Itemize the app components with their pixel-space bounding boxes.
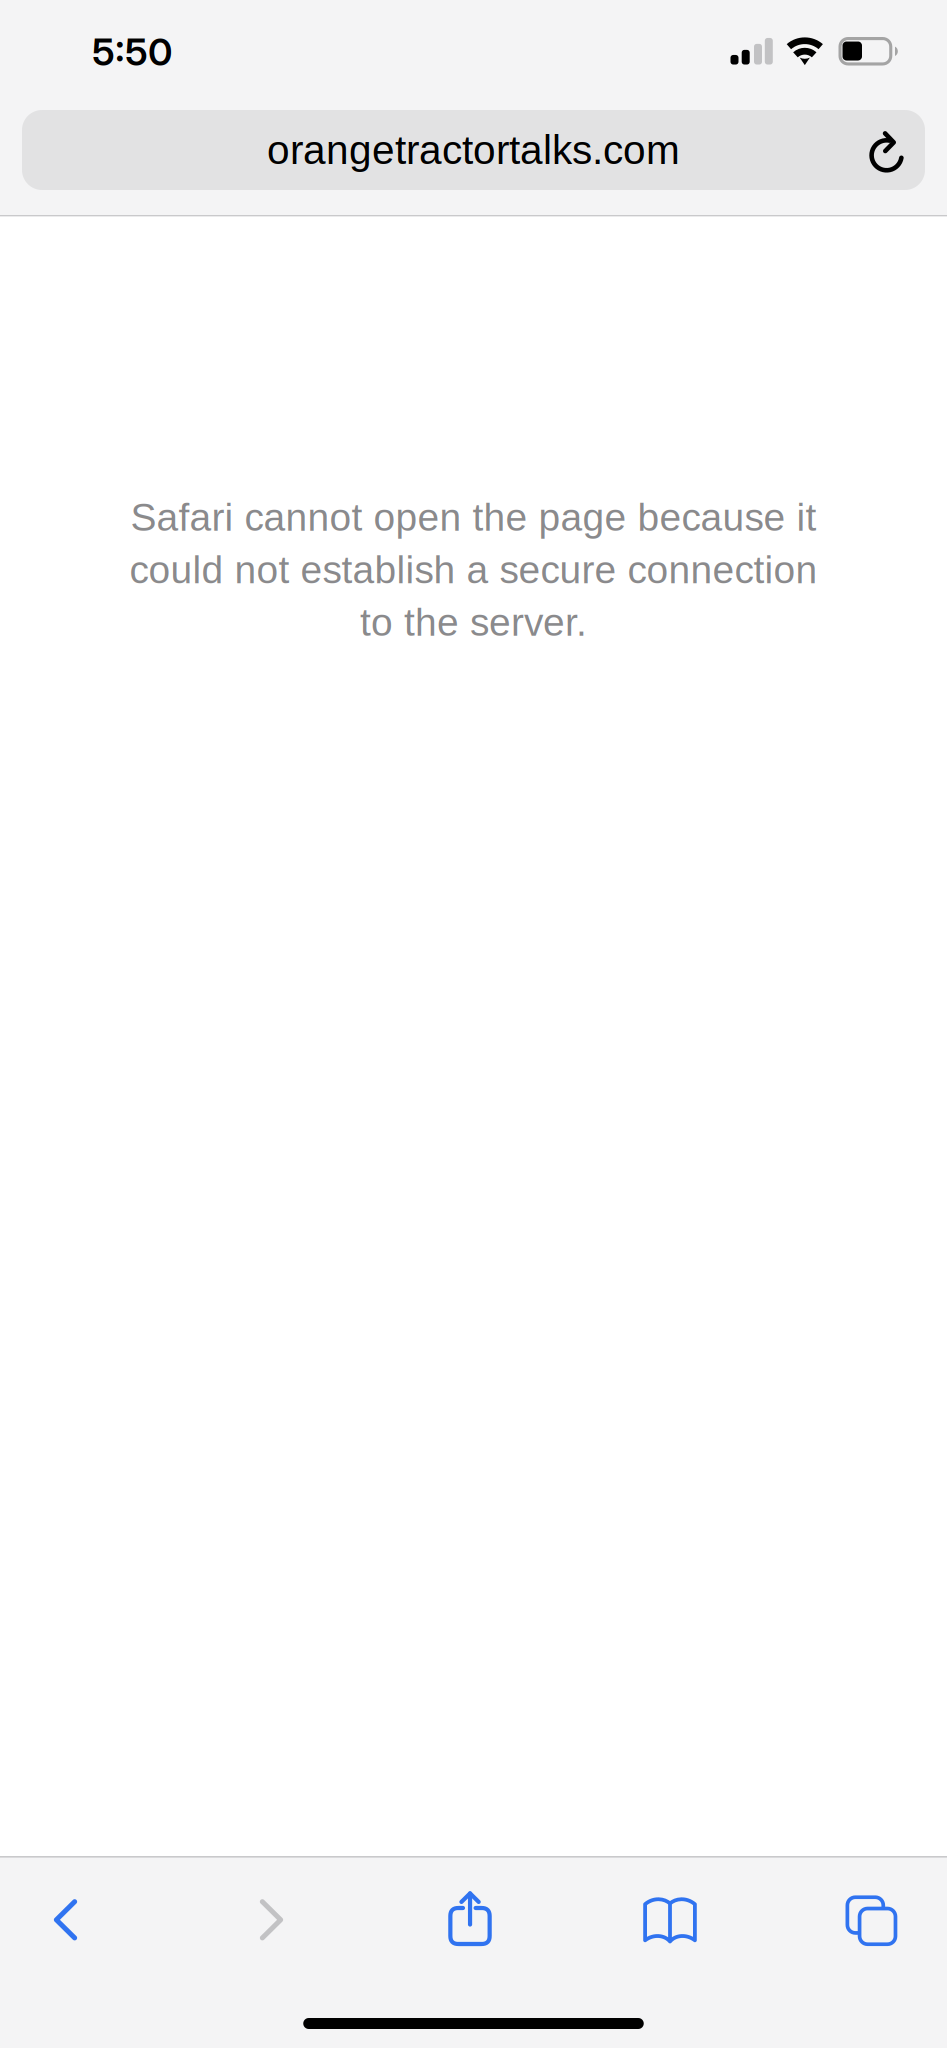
button[interactable]: Tabs: [820, 1858, 920, 1982]
staticText: to the server.: [360, 601, 587, 644]
staticText: Safari cannot open the page because it: [130, 496, 816, 539]
button[interactable]: Bookmarks: [620, 1858, 720, 1982]
staticText: orangetractortalks.com: [267, 127, 680, 173]
staticText: 5:50: [92, 28, 172, 75]
button[interactable]: Forward: [221, 1858, 321, 1982]
button[interactable]: orangetractortalks.com: [22, 110, 925, 190]
button[interactable]: Reload: [847, 110, 925, 190]
button[interactable]: Back: [15, 1858, 115, 1982]
staticText: could not establish a secure connection: [129, 548, 817, 592]
button[interactable]: Share: [420, 1858, 520, 1982]
